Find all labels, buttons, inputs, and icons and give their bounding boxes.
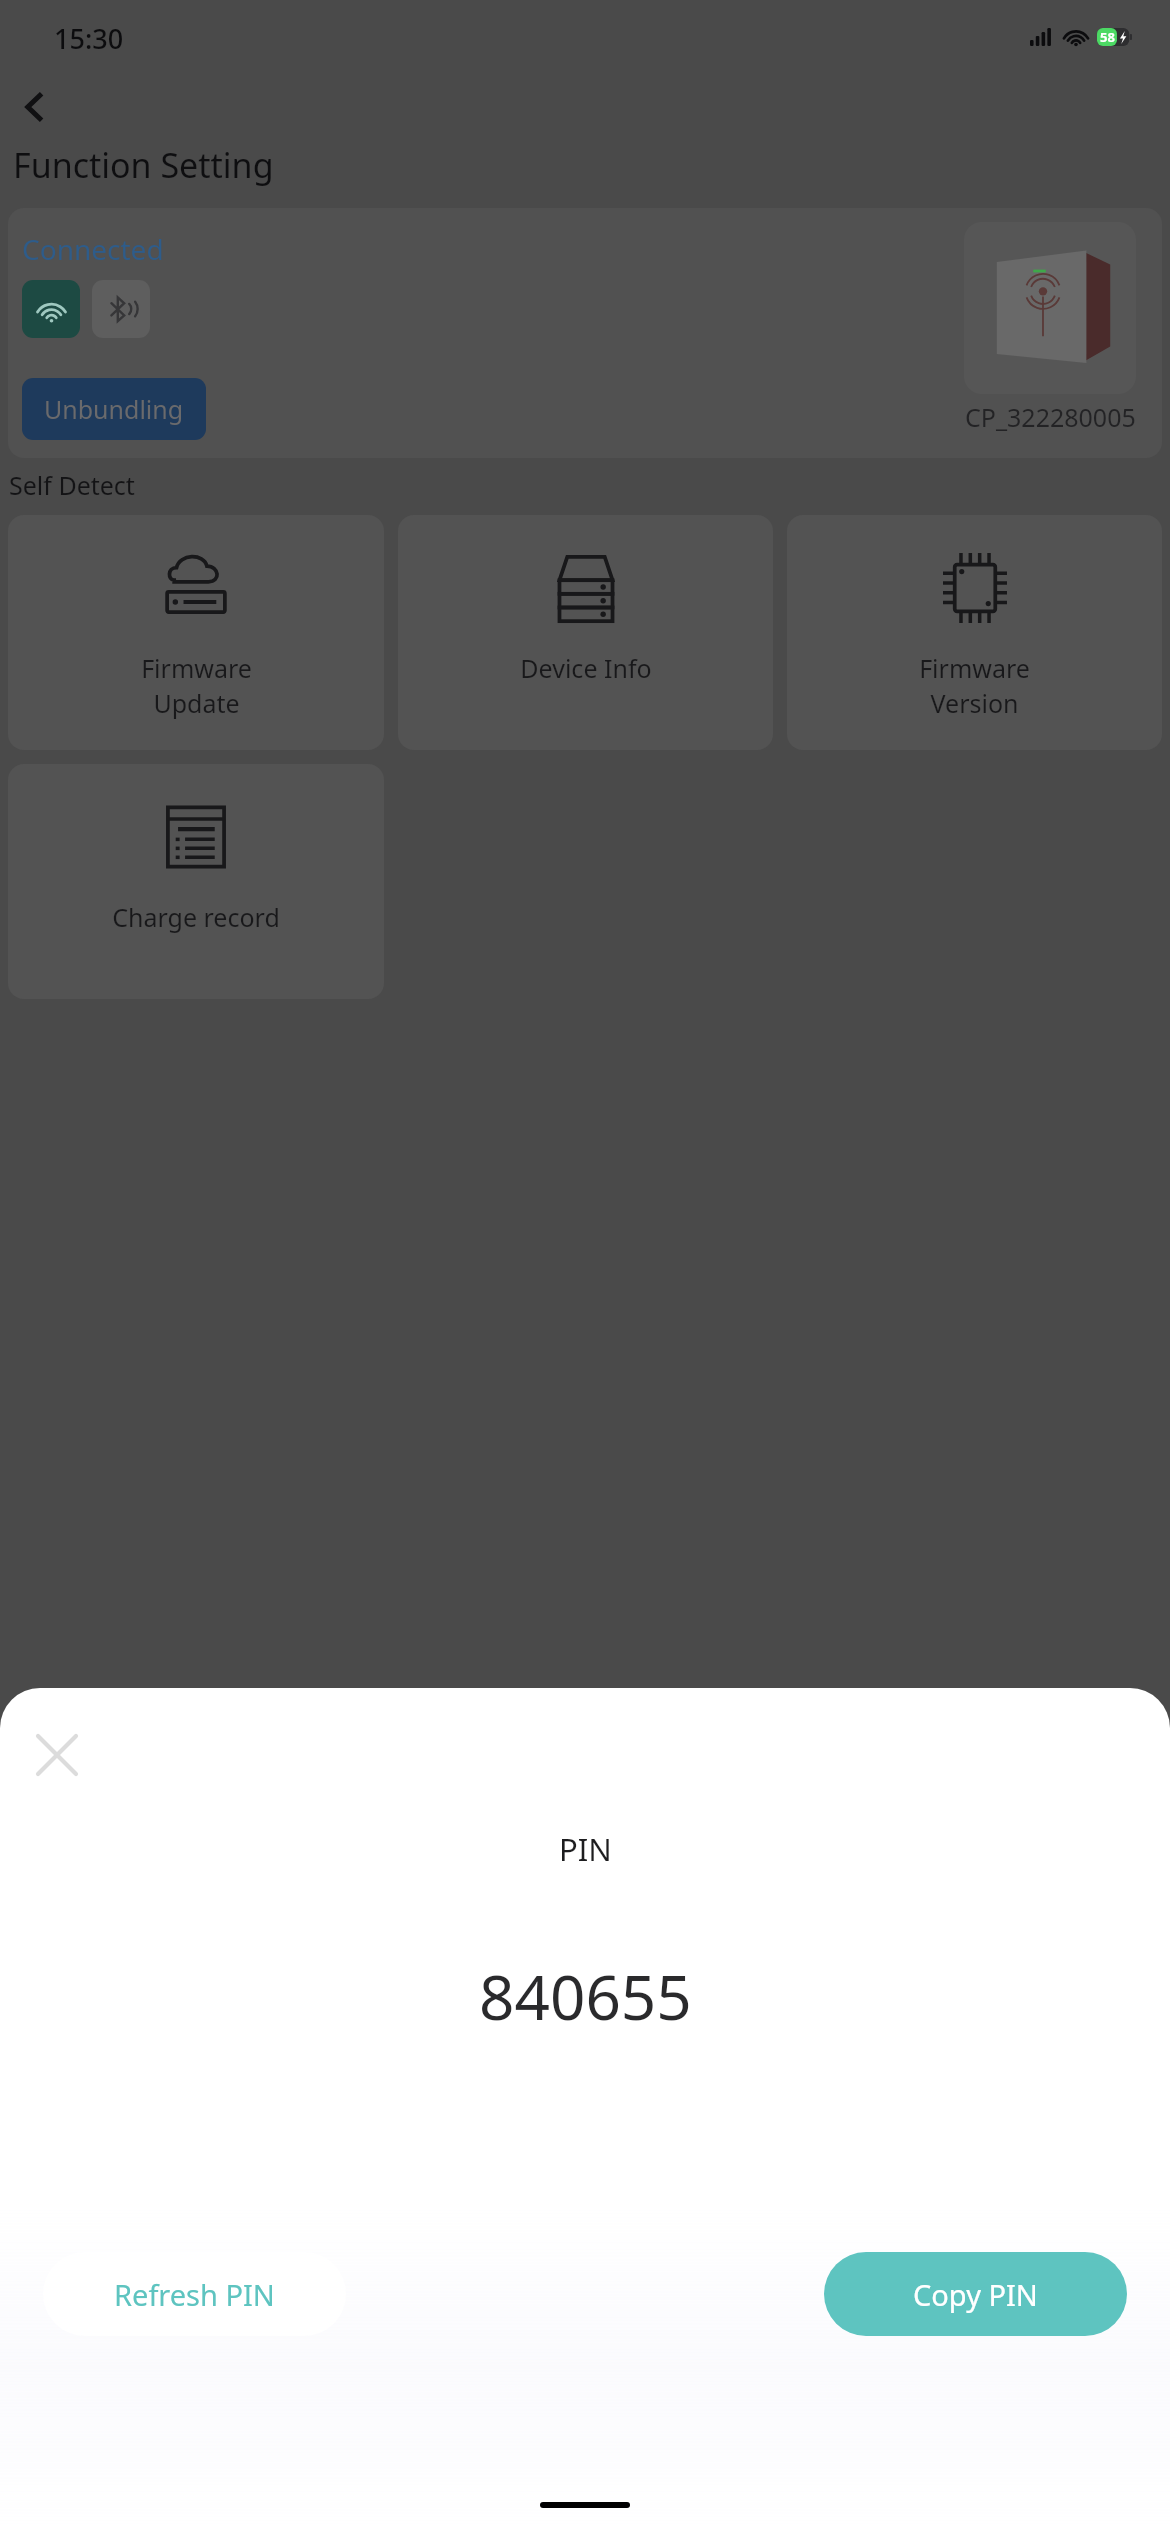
staticText: Firmware Update (141, 651, 252, 721)
staticText: Charge record (112, 900, 280, 934)
button[interactable]: Unbundling (22, 378, 206, 440)
staticText: Copy PIN (913, 2275, 1038, 2314)
staticText: Device Info (520, 651, 652, 685)
button[interactable]: Connected (8, 208, 1162, 458)
button[interactable]: Firmware Version (787, 515, 1162, 750)
staticText: 58 (1100, 28, 1115, 46)
staticText: Firmware Version (919, 651, 1030, 721)
staticText: Self Detect (9, 468, 135, 502)
staticText: Connected (22, 230, 164, 268)
staticText: Unbundling (44, 392, 184, 426)
button[interactable]: Firmware Update (8, 515, 384, 750)
staticText: Function Setting (13, 142, 274, 188)
staticText: 15:30 (54, 20, 124, 57)
button[interactable]: Close (26, 1724, 88, 1786)
staticText: PIN (559, 1828, 612, 1870)
button[interactable]: Back (8, 80, 62, 134)
button[interactable]: Bluetooth (92, 280, 150, 338)
button[interactable]: Charge record (8, 764, 384, 999)
staticText: CP_322280005 (965, 400, 1136, 434)
staticText: Refresh PIN (114, 2275, 275, 2314)
staticText: 840655 (479, 1954, 692, 2038)
button[interactable]: Device Info (398, 515, 773, 750)
button[interactable]: Copy PIN (824, 2252, 1127, 2336)
button[interactable]: Refresh PIN (43, 2252, 346, 2336)
button[interactable]: Wi-Fi (22, 280, 80, 338)
